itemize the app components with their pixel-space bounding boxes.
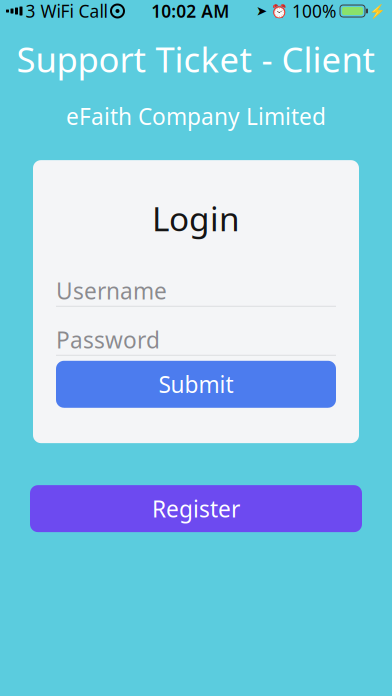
staticText: Login — [152, 196, 240, 240]
staticText: 100% — [292, 0, 336, 22]
staticText: eFaith Company Limited — [66, 101, 326, 131]
staticText: Username — [56, 276, 167, 306]
staticText: 10:02 AM — [151, 0, 229, 22]
staticText: Support Ticket - Client — [16, 36, 375, 82]
staticText: ⚡ — [369, 3, 386, 19]
staticText: Register — [152, 494, 240, 524]
staticText: ➤ — [256, 3, 267, 18]
staticText: ⏰ — [271, 3, 288, 19]
button[interactable]: Register — [30, 485, 362, 532]
staticText: Submit — [158, 369, 233, 399]
button[interactable]: Submit — [56, 361, 336, 408]
staticText: Password — [56, 325, 160, 355]
staticText: 3 WiFi Call — [25, 0, 107, 22]
